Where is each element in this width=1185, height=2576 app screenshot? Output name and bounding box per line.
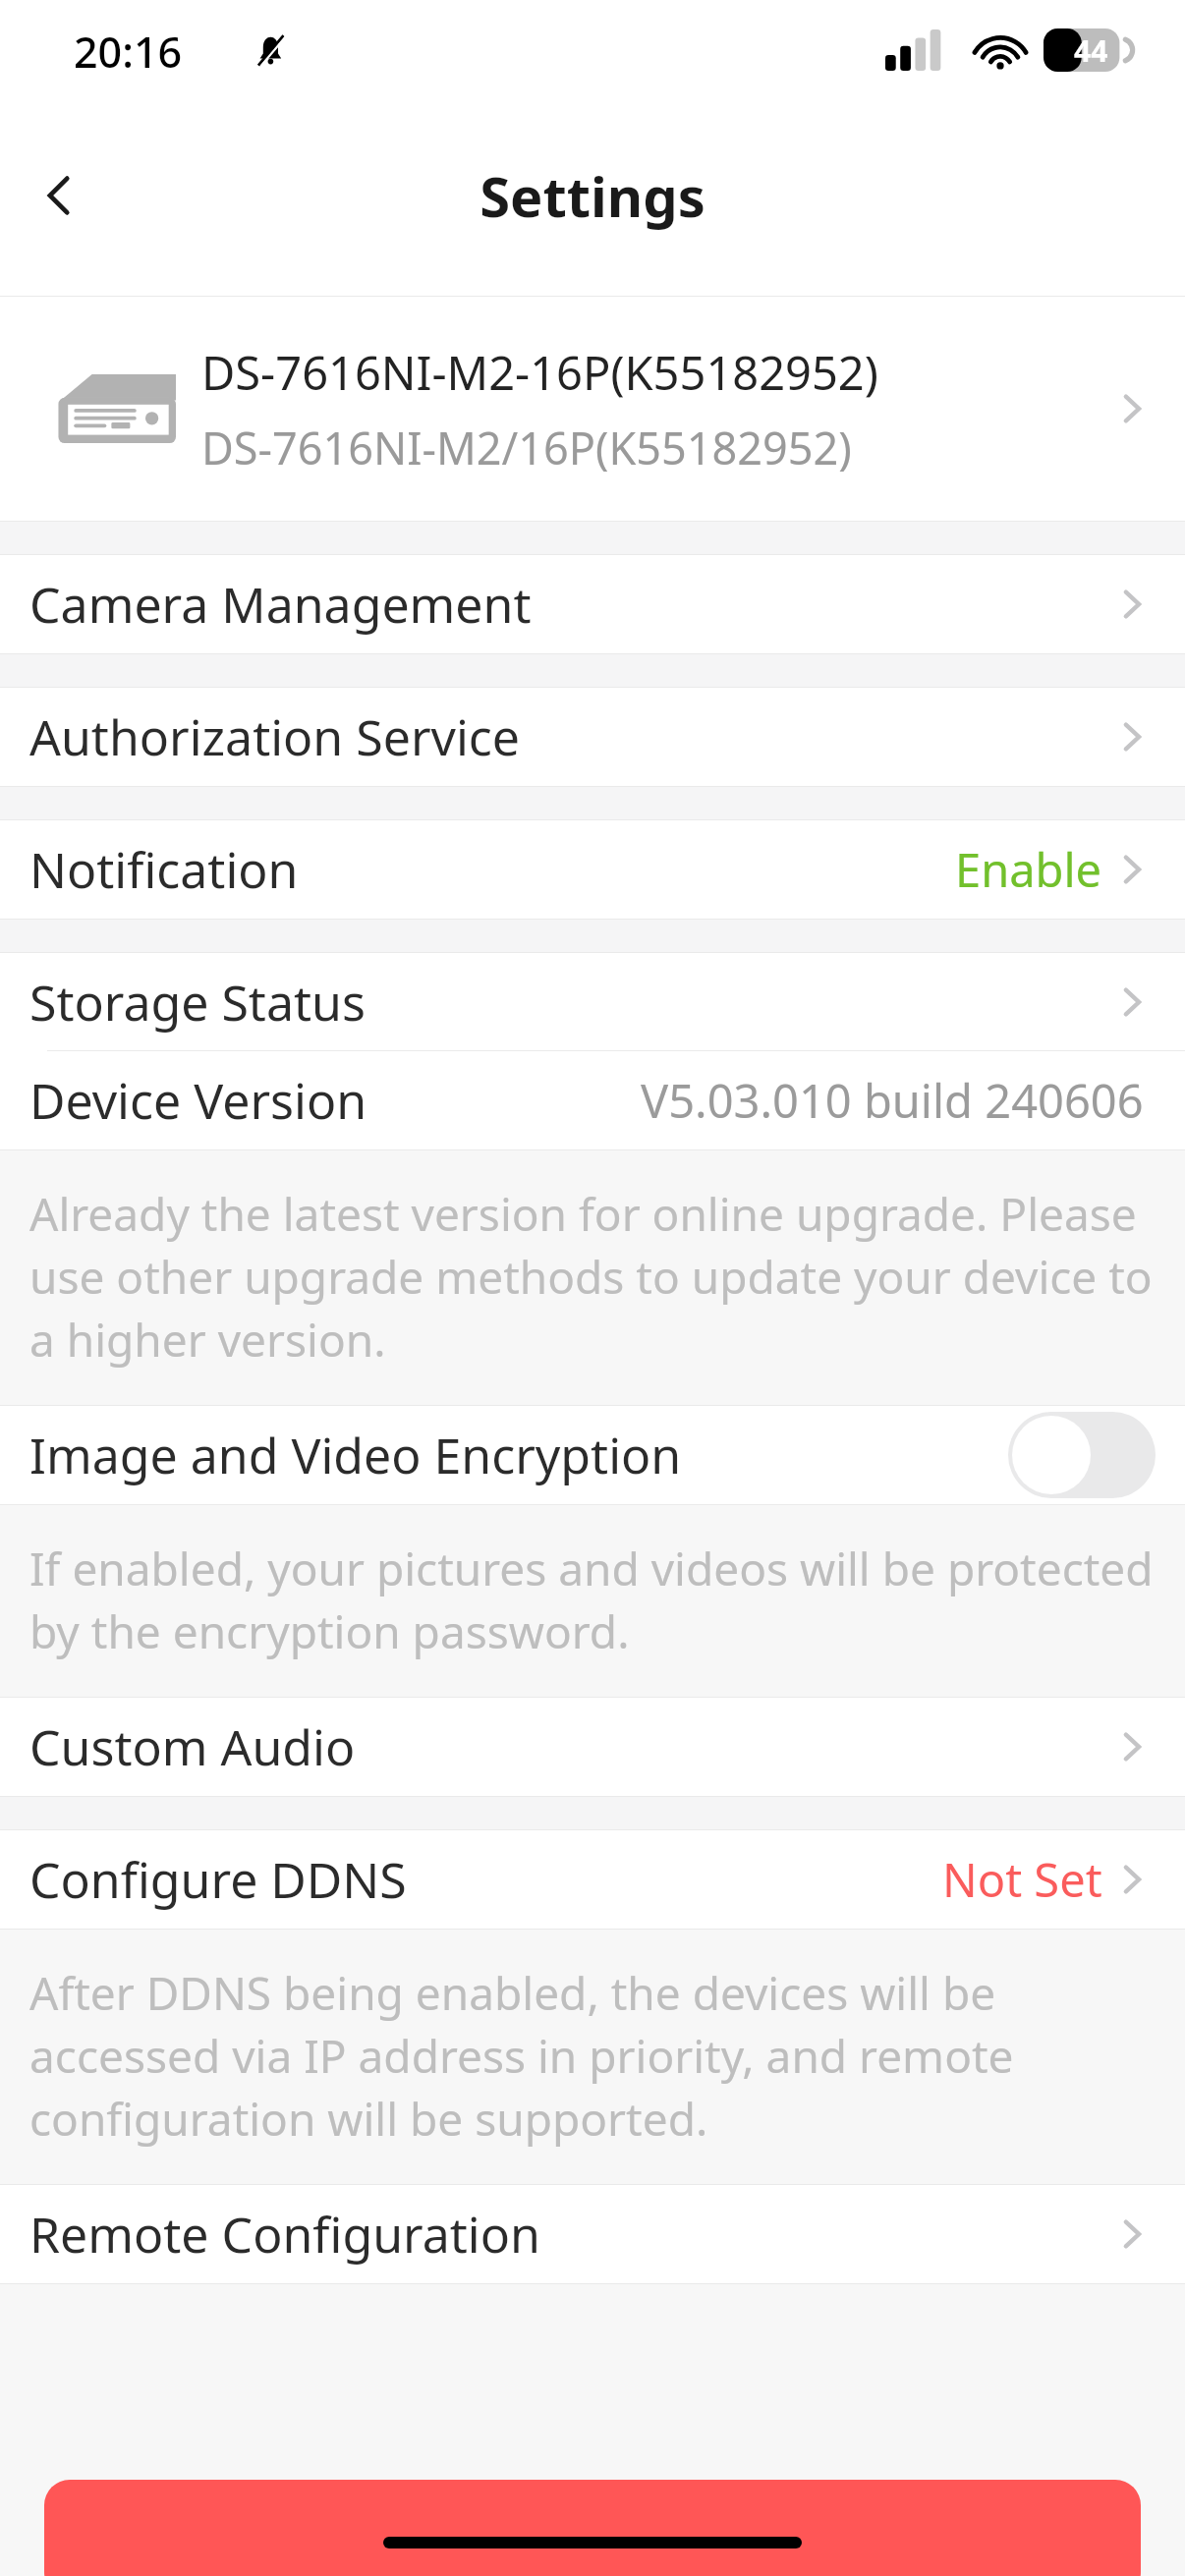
staticText: DS-7616NI-M2/16P(K55182952): [201, 418, 852, 477]
staticText: 20:16: [74, 23, 183, 81]
button[interactable]: Custom Audio: [0, 1698, 1185, 1796]
staticText: Storage Status: [29, 969, 1110, 1036]
button[interactable]: Configure DDNS: [0, 1830, 1185, 1929]
staticText: Authorization Service: [29, 703, 1110, 770]
button[interactable]: Storage Status: [0, 953, 1185, 1051]
staticText: 44: [1074, 30, 1108, 71]
staticText: Settings: [480, 158, 705, 233]
button[interactable]: Back: [18, 154, 100, 237]
staticText: If enabled, your pictures and videos wil…: [29, 1538, 1154, 1662]
staticText: Configure DDNS: [29, 1846, 942, 1913]
button[interactable]: Image and Video Encryption toggle: [1008, 1412, 1156, 1498]
staticText: V5.03.010 build 240606: [641, 1069, 1144, 1132]
button[interactable]: Device Version: [0, 1051, 1185, 1149]
staticText: Custom Audio: [29, 1713, 1110, 1780]
staticText: Image and Video Encryption: [29, 1422, 1008, 1488]
staticText: Camera Management: [29, 571, 1110, 638]
staticText: Not Set: [942, 1848, 1102, 1911]
staticText: Enable: [955, 838, 1102, 901]
button[interactable]: Authorization Service: [0, 688, 1185, 786]
staticText: Device Version: [29, 1067, 641, 1134]
staticText: Already the latest version for online up…: [29, 1183, 1154, 1371]
staticText: Remote Configuration: [29, 2201, 1110, 2268]
button[interactable]: Image and Video Encryption: [0, 1406, 1185, 1504]
button[interactable]: Remote Configuration: [0, 2185, 1185, 2283]
staticText: After DDNS being enabled, the devices wi…: [29, 1962, 1154, 2150]
staticText: Notification: [29, 836, 955, 903]
button[interactable]: Camera Management: [0, 555, 1185, 653]
button[interactable]: DS-7616NI-M2-16P(K55182952): [0, 297, 1185, 521]
button[interactable]: [44, 2480, 1141, 2576]
button[interactable]: Notification: [0, 820, 1185, 919]
staticText: DS-7616NI-M2-16P(K55182952): [201, 341, 878, 404]
